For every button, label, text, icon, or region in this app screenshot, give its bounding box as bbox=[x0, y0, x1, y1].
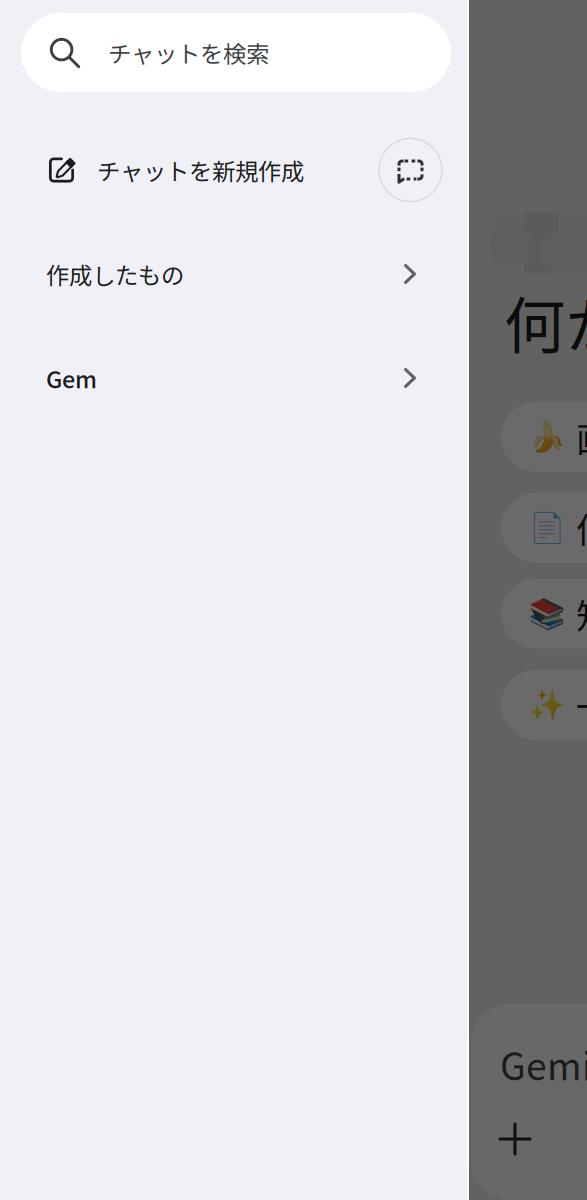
staticText: 何か手伝えることはありますか？ bbox=[504, 277, 587, 366]
staticText: チャットを新規作成 bbox=[97, 153, 304, 187]
button[interactable]: 作成したもの bbox=[0, 242, 469, 306]
staticText: 画像を生成 bbox=[576, 412, 587, 462]
staticText: ✨ bbox=[529, 688, 566, 722]
staticText: 📚 bbox=[529, 597, 566, 631]
staticText: Gem bbox=[46, 361, 97, 395]
button[interactable]: Gem bbox=[0, 346, 469, 410]
button[interactable]: Ask about screen bbox=[379, 138, 442, 201]
staticText: チャットを検索 bbox=[108, 36, 269, 69]
staticText: 何でも質問 bbox=[576, 503, 587, 553]
button[interactable]: チャットを検索 bbox=[21, 13, 451, 92]
staticText: 🍌 bbox=[529, 420, 566, 454]
staticText: 📄 bbox=[529, 511, 566, 545]
staticText: 作成したもの bbox=[46, 257, 184, 291]
staticText: 知識を深める bbox=[576, 589, 587, 639]
staticText: Gemini に相談 bbox=[500, 1037, 587, 1091]
button[interactable]: チャットを新規作成 bbox=[0, 138, 304, 202]
staticText: 一緒に学ぶ bbox=[576, 680, 587, 730]
